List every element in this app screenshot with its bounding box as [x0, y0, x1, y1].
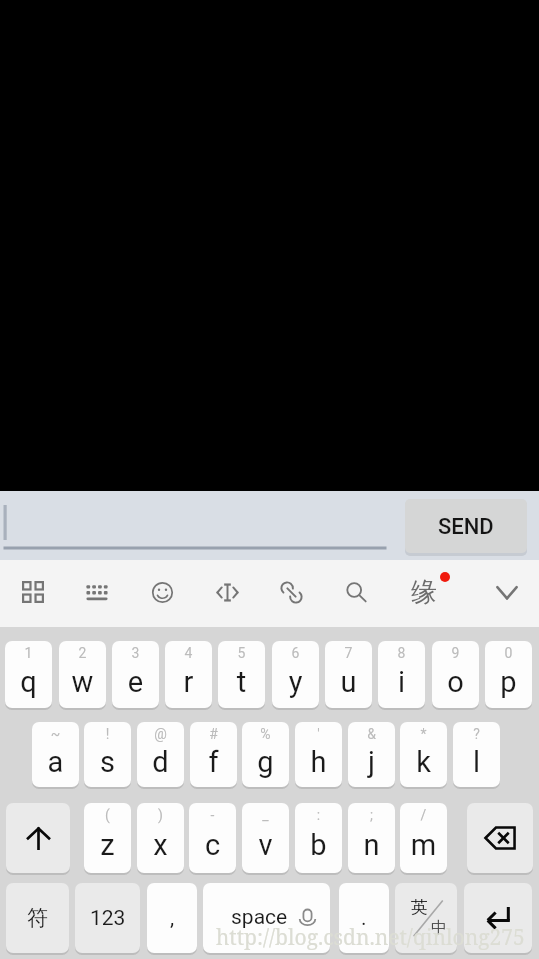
staticText: # [190, 726, 237, 742]
staticText: : [295, 807, 342, 823]
staticText: s [84, 745, 131, 779]
button[interactable]: # [190, 722, 237, 787]
staticText: & [348, 726, 395, 742]
staticText: x [137, 828, 184, 862]
staticText: ~ [32, 726, 79, 742]
staticText: - [189, 807, 236, 823]
staticText: 1 [5, 645, 52, 661]
staticText: 8 [378, 645, 425, 661]
staticText: _ [242, 807, 289, 823]
staticText: i [378, 665, 425, 699]
button[interactable]: 3 [112, 641, 159, 708]
button[interactable]: * [400, 722, 447, 787]
button[interactable]: Switch language [395, 883, 457, 953]
button[interactable]: Backspace [467, 803, 533, 873]
staticText: o [432, 665, 479, 699]
button[interactable]: Apps [5, 564, 61, 620]
button[interactable]: - [189, 803, 236, 873]
button[interactable]: Keyboard [69, 564, 125, 620]
staticText: ? [453, 726, 500, 742]
staticText: v [242, 828, 289, 862]
button[interactable]: Shift [6, 803, 70, 873]
button[interactable]: 6 [272, 641, 319, 708]
button[interactable]: & [348, 722, 395, 787]
staticText: , [170, 906, 175, 931]
staticText: http://blog.csdn.net/qinlong275 [216, 923, 525, 952]
button[interactable]: Enter [464, 883, 532, 953]
staticText: 中 [431, 918, 447, 938]
staticText: t [218, 665, 265, 699]
staticText: ; [348, 807, 395, 823]
button[interactable]: Emoji [134, 564, 190, 620]
button[interactable]: , [147, 883, 197, 953]
staticText: w [59, 665, 106, 699]
staticText: y [272, 665, 319, 699]
button[interactable]: 1 [5, 641, 52, 708]
button[interactable]: 7 [325, 641, 372, 708]
button[interactable]: 8 [378, 641, 425, 708]
button[interactable]: 5 [218, 641, 265, 708]
button[interactable]: . [339, 883, 389, 953]
staticText: d [137, 745, 184, 779]
staticText: m [400, 828, 447, 862]
button[interactable]: ; [348, 803, 395, 873]
button[interactable]: 9 [432, 641, 479, 708]
button[interactable]: Link [263, 564, 319, 620]
staticText: n [348, 828, 395, 862]
button[interactable]: : [295, 803, 342, 873]
button[interactable]: Search [328, 564, 384, 620]
staticText: c [189, 828, 236, 862]
staticText: 缘 [411, 576, 437, 609]
button[interactable]: 缘 [395, 564, 451, 620]
staticText: u [325, 665, 372, 699]
staticText: b [295, 828, 342, 862]
button[interactable]: 0 [485, 641, 532, 708]
staticText: @ [137, 726, 184, 742]
staticText: ( [84, 807, 131, 823]
button[interactable]: ? [453, 722, 500, 787]
staticText: . [361, 906, 367, 931]
staticText: 4 [165, 645, 212, 661]
staticText: 2 [59, 645, 106, 661]
button[interactable]: @ [137, 722, 184, 787]
staticText: r [165, 665, 212, 699]
staticText: z [84, 828, 131, 862]
button[interactable]: ~ [32, 722, 79, 787]
button[interactable]: _ [242, 803, 289, 873]
staticText: 3 [112, 645, 159, 661]
button[interactable]: 123 [75, 883, 140, 953]
button[interactable]: ' [295, 722, 342, 787]
staticText: / [400, 807, 447, 823]
button[interactable]: Move cursor [199, 564, 255, 620]
button[interactable]: Hide keyboard [479, 564, 535, 620]
button[interactable]: ! [84, 722, 131, 787]
button[interactable]: 2 [59, 641, 106, 708]
staticText: e [112, 665, 159, 699]
staticText: ' [295, 726, 342, 742]
staticText: h [295, 745, 342, 779]
staticText: a [32, 745, 79, 779]
staticText: q [5, 665, 52, 699]
button[interactable]: SEND [405, 499, 527, 553]
button[interactable]: ( [84, 803, 131, 873]
button[interactable]: 符 [6, 883, 69, 953]
button[interactable]: ) [137, 803, 184, 873]
staticText: p [485, 665, 532, 699]
button[interactable]: / [400, 803, 447, 873]
staticText: SEND [438, 514, 494, 540]
staticText: ) [137, 807, 184, 823]
staticText: 符 [27, 905, 48, 931]
staticText: % [242, 726, 289, 742]
staticText: 英 [411, 897, 428, 918]
staticText: f [190, 745, 237, 779]
staticText: g [242, 745, 289, 779]
staticText: * [400, 726, 447, 742]
button[interactable]: 4 [165, 641, 212, 708]
staticText: l [453, 745, 500, 779]
staticText: k [400, 745, 447, 779]
button[interactable]: space [203, 883, 330, 953]
staticText: 7 [325, 645, 372, 661]
button[interactable]: % [242, 722, 289, 787]
staticText: 123 [90, 906, 126, 931]
staticText: 6 [272, 645, 319, 661]
